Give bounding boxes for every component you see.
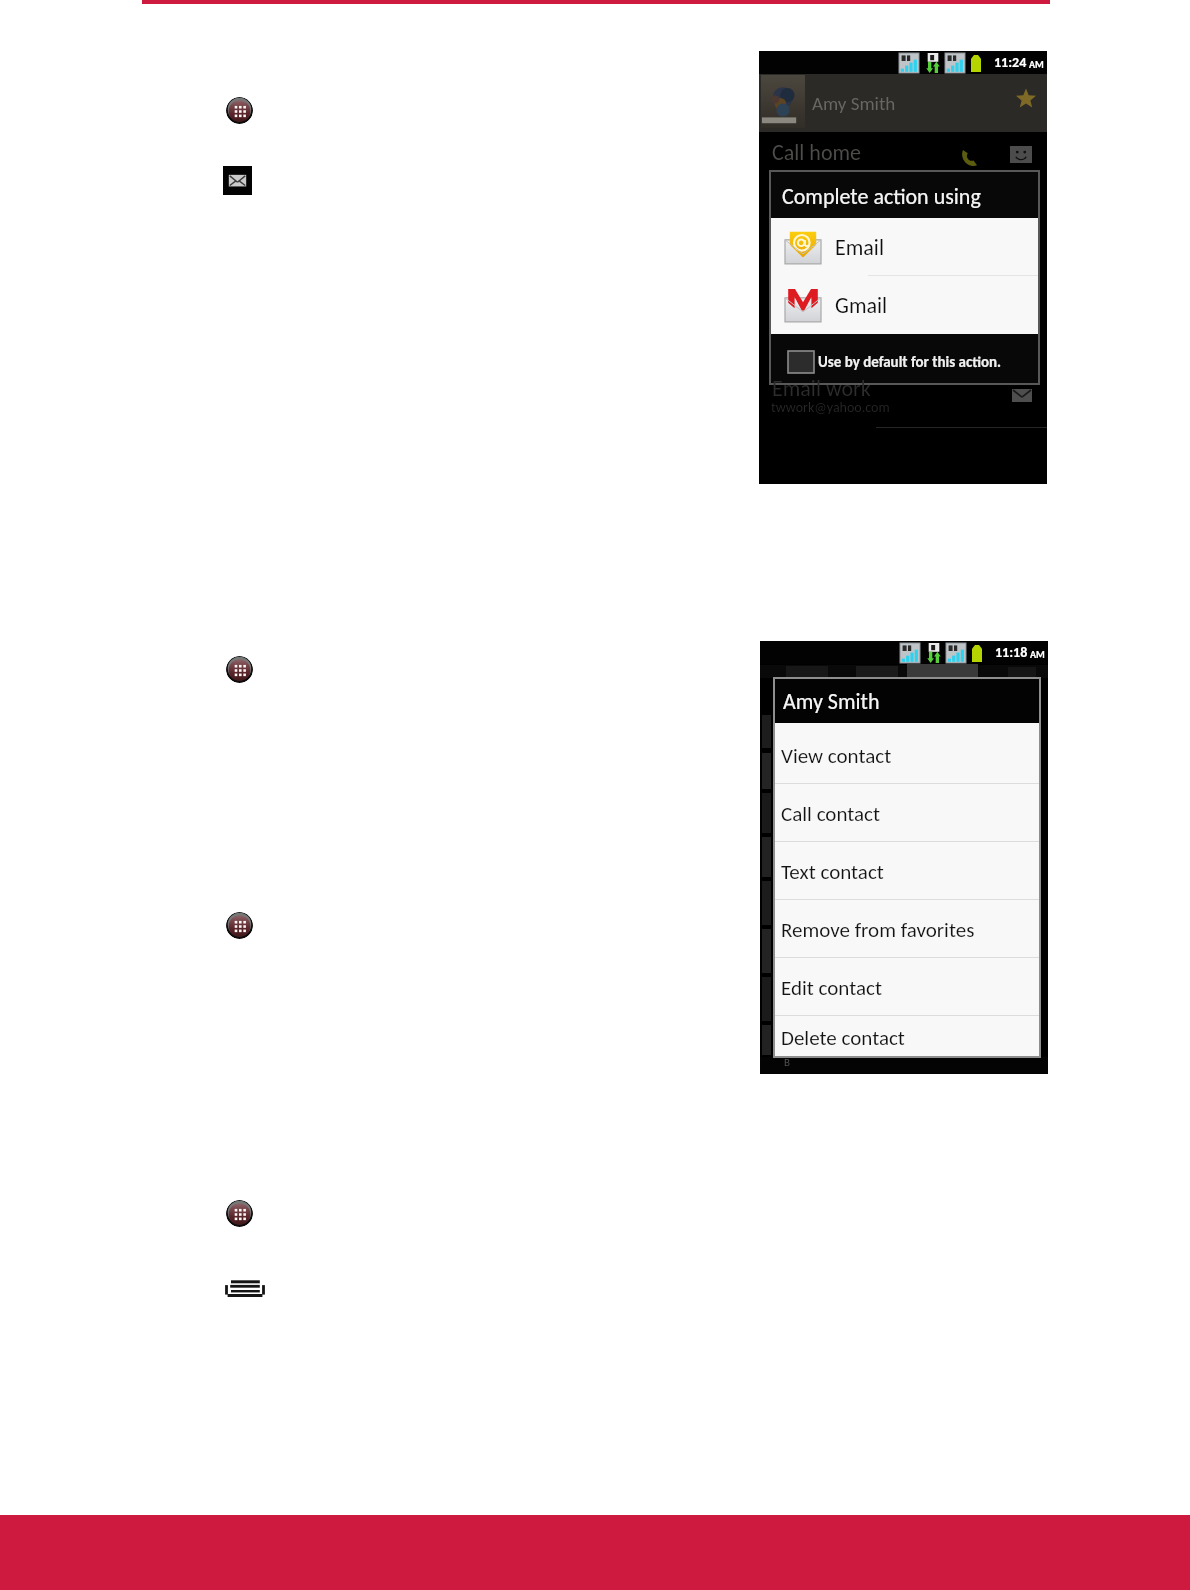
staticText: Call contact [781, 801, 881, 827]
button[interactable]: Dialer [226, 1200, 253, 1227]
button[interactable]: Dialer [226, 97, 253, 124]
staticText: View contact [781, 743, 892, 769]
button[interactable]: Gmail [770, 276, 1039, 333]
button[interactable]: Remove from favorites [774, 900, 1040, 958]
staticText: twwork@yahoo.com [771, 399, 890, 416]
button[interactable]: Use by default for this action. [770, 334, 1039, 384]
button[interactable]: Email [223, 166, 252, 195]
staticText: Call home [772, 139, 862, 166]
staticText: AM [1030, 648, 1045, 660]
staticText: Amy Smith [783, 688, 880, 715]
button[interactable]: Send email [1010, 386, 1034, 405]
staticText: 11:18 [995, 644, 1028, 661]
staticText: Email [835, 234, 884, 261]
staticText: AM [1029, 58, 1044, 70]
button[interactable]: Call contact [774, 784, 1040, 842]
staticText: Edit contact [781, 975, 882, 1001]
button[interactable]: Menu [225, 1280, 265, 1297]
button[interactable]: Dialer [226, 656, 253, 683]
staticText: Email work [772, 375, 871, 402]
button[interactable]: Dialer [226, 912, 253, 939]
button[interactable]: Call home [759, 132, 1047, 171]
button[interactable]: Text contact [774, 842, 1040, 900]
staticText: Complete action using [782, 183, 981, 210]
button[interactable]: Favorite [1015, 88, 1037, 110]
staticText: Use by default for this action. [818, 353, 1002, 371]
staticText: 11:24 [994, 54, 1027, 71]
staticText: Remove from favorites [781, 917, 975, 943]
button[interactable]: Edit contact [774, 958, 1040, 1016]
button[interactable]: Call [957, 143, 985, 171]
staticText: B [784, 1056, 790, 1069]
button[interactable]: View contact [774, 726, 1040, 784]
button[interactable]: Email [770, 218, 1039, 275]
staticText: Gmail [835, 292, 888, 319]
staticText: Text contact [781, 859, 884, 885]
staticText: Amy Smith [812, 92, 896, 115]
staticText: Delete contact [781, 1025, 905, 1051]
button[interactable]: Send message [1008, 143, 1034, 166]
button[interactable]: Email work [759, 369, 1047, 427]
button[interactable]: Delete contact [774, 1016, 1040, 1057]
